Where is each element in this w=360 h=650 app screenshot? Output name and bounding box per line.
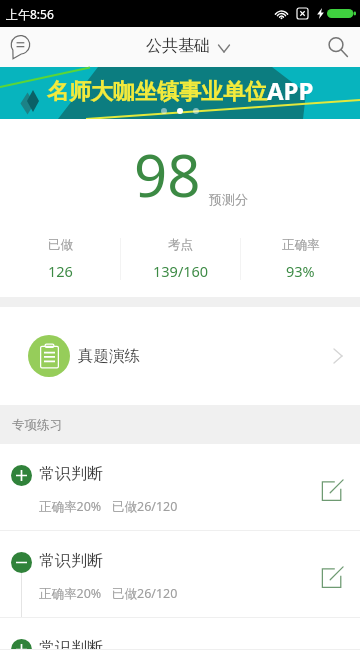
- staticText: 考点: [168, 237, 193, 253]
- button[interactable]: Search: [322, 31, 354, 63]
- staticText: 专项练习: [12, 417, 62, 433]
- staticText: 已做26/120: [112, 498, 178, 515]
- staticText: 正确率20%: [39, 585, 102, 602]
- staticText: 名师大咖坐镇事业单位: [47, 78, 267, 106]
- staticText: 正确率: [282, 237, 320, 253]
- staticText: 已做: [48, 237, 73, 253]
- staticText: 常识判断: [39, 464, 103, 484]
- button[interactable]: 真题演练: [0, 307, 360, 405]
- staticText: 常识判断: [39, 551, 103, 571]
- staticText: 公共基础: [146, 36, 210, 56]
- staticText: 常识判断: [39, 638, 103, 650]
- button[interactable]: Edit: [317, 562, 347, 592]
- staticText: 139/160: [153, 261, 209, 281]
- staticText: 已做26/120: [112, 585, 178, 602]
- button[interactable]: 常识判断: [0, 444, 360, 531]
- button[interactable]: 公共基础: [146, 36, 230, 56]
- staticText: 真题演练: [78, 346, 140, 366]
- button[interactable]: Messages: [4, 31, 36, 63]
- button[interactable]: Edit: [317, 475, 347, 505]
- staticText: 正确率20%: [39, 498, 102, 515]
- staticText: 93%: [286, 261, 315, 281]
- staticText: 上午8:56: [6, 6, 54, 22]
- button[interactable]: 名师大咖坐镇事业单位: [0, 67, 360, 119]
- staticText: APP: [267, 74, 314, 107]
- staticText: 126: [48, 261, 73, 281]
- staticText: 预测分: [209, 191, 248, 207]
- button[interactable]: 常识判断: [0, 618, 360, 650]
- staticText: 98: [134, 135, 201, 214]
- button[interactable]: 常识判断: [0, 531, 360, 618]
